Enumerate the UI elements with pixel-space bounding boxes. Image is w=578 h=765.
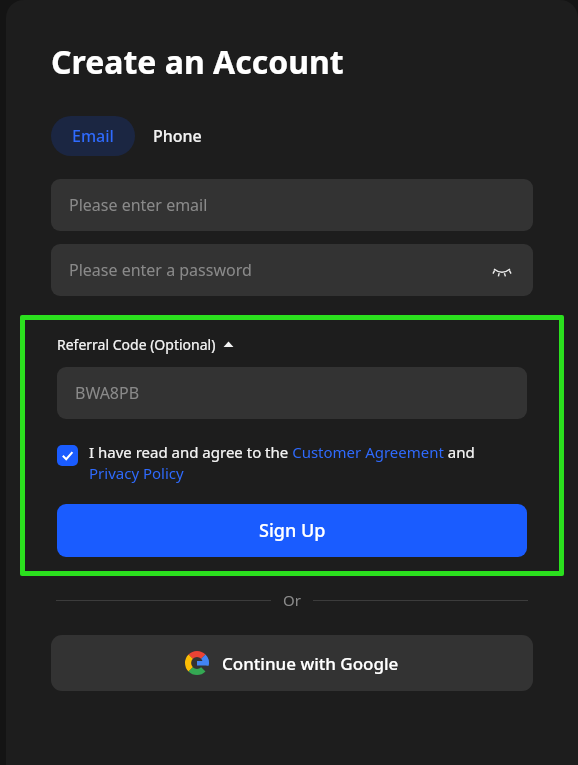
staticText: BWA8PB xyxy=(75,382,140,404)
staticText: Please enter email xyxy=(69,194,208,216)
staticText: Create an Account xyxy=(51,40,344,84)
button[interactable]: Sign Up xyxy=(57,504,527,557)
staticText: I have read and agree to the Customer Ag… xyxy=(89,442,527,484)
button[interactable]: Email xyxy=(51,116,135,156)
button[interactable]: BWA8PB xyxy=(57,367,527,419)
button[interactable]: Referral Code (Optional) xyxy=(25,333,266,356)
staticText: Referral Code (Optional) xyxy=(57,335,216,354)
staticText: Sign Up xyxy=(259,518,326,543)
button[interactable]: Continue with Google xyxy=(51,635,533,691)
staticText: Phone xyxy=(153,125,202,147)
staticText: Or xyxy=(283,590,301,610)
button[interactable]: Show password xyxy=(489,257,515,283)
staticText: Continue with Google xyxy=(222,652,399,675)
button[interactable]: Please enter email xyxy=(51,179,533,231)
button[interactable]: I have read and agree to the Customer Ag… xyxy=(57,442,527,484)
staticText: Please enter a password xyxy=(69,259,252,281)
button[interactable]: Please enter a password xyxy=(51,244,533,296)
button[interactable]: Phone xyxy=(135,116,220,156)
staticText: Email xyxy=(72,125,114,147)
